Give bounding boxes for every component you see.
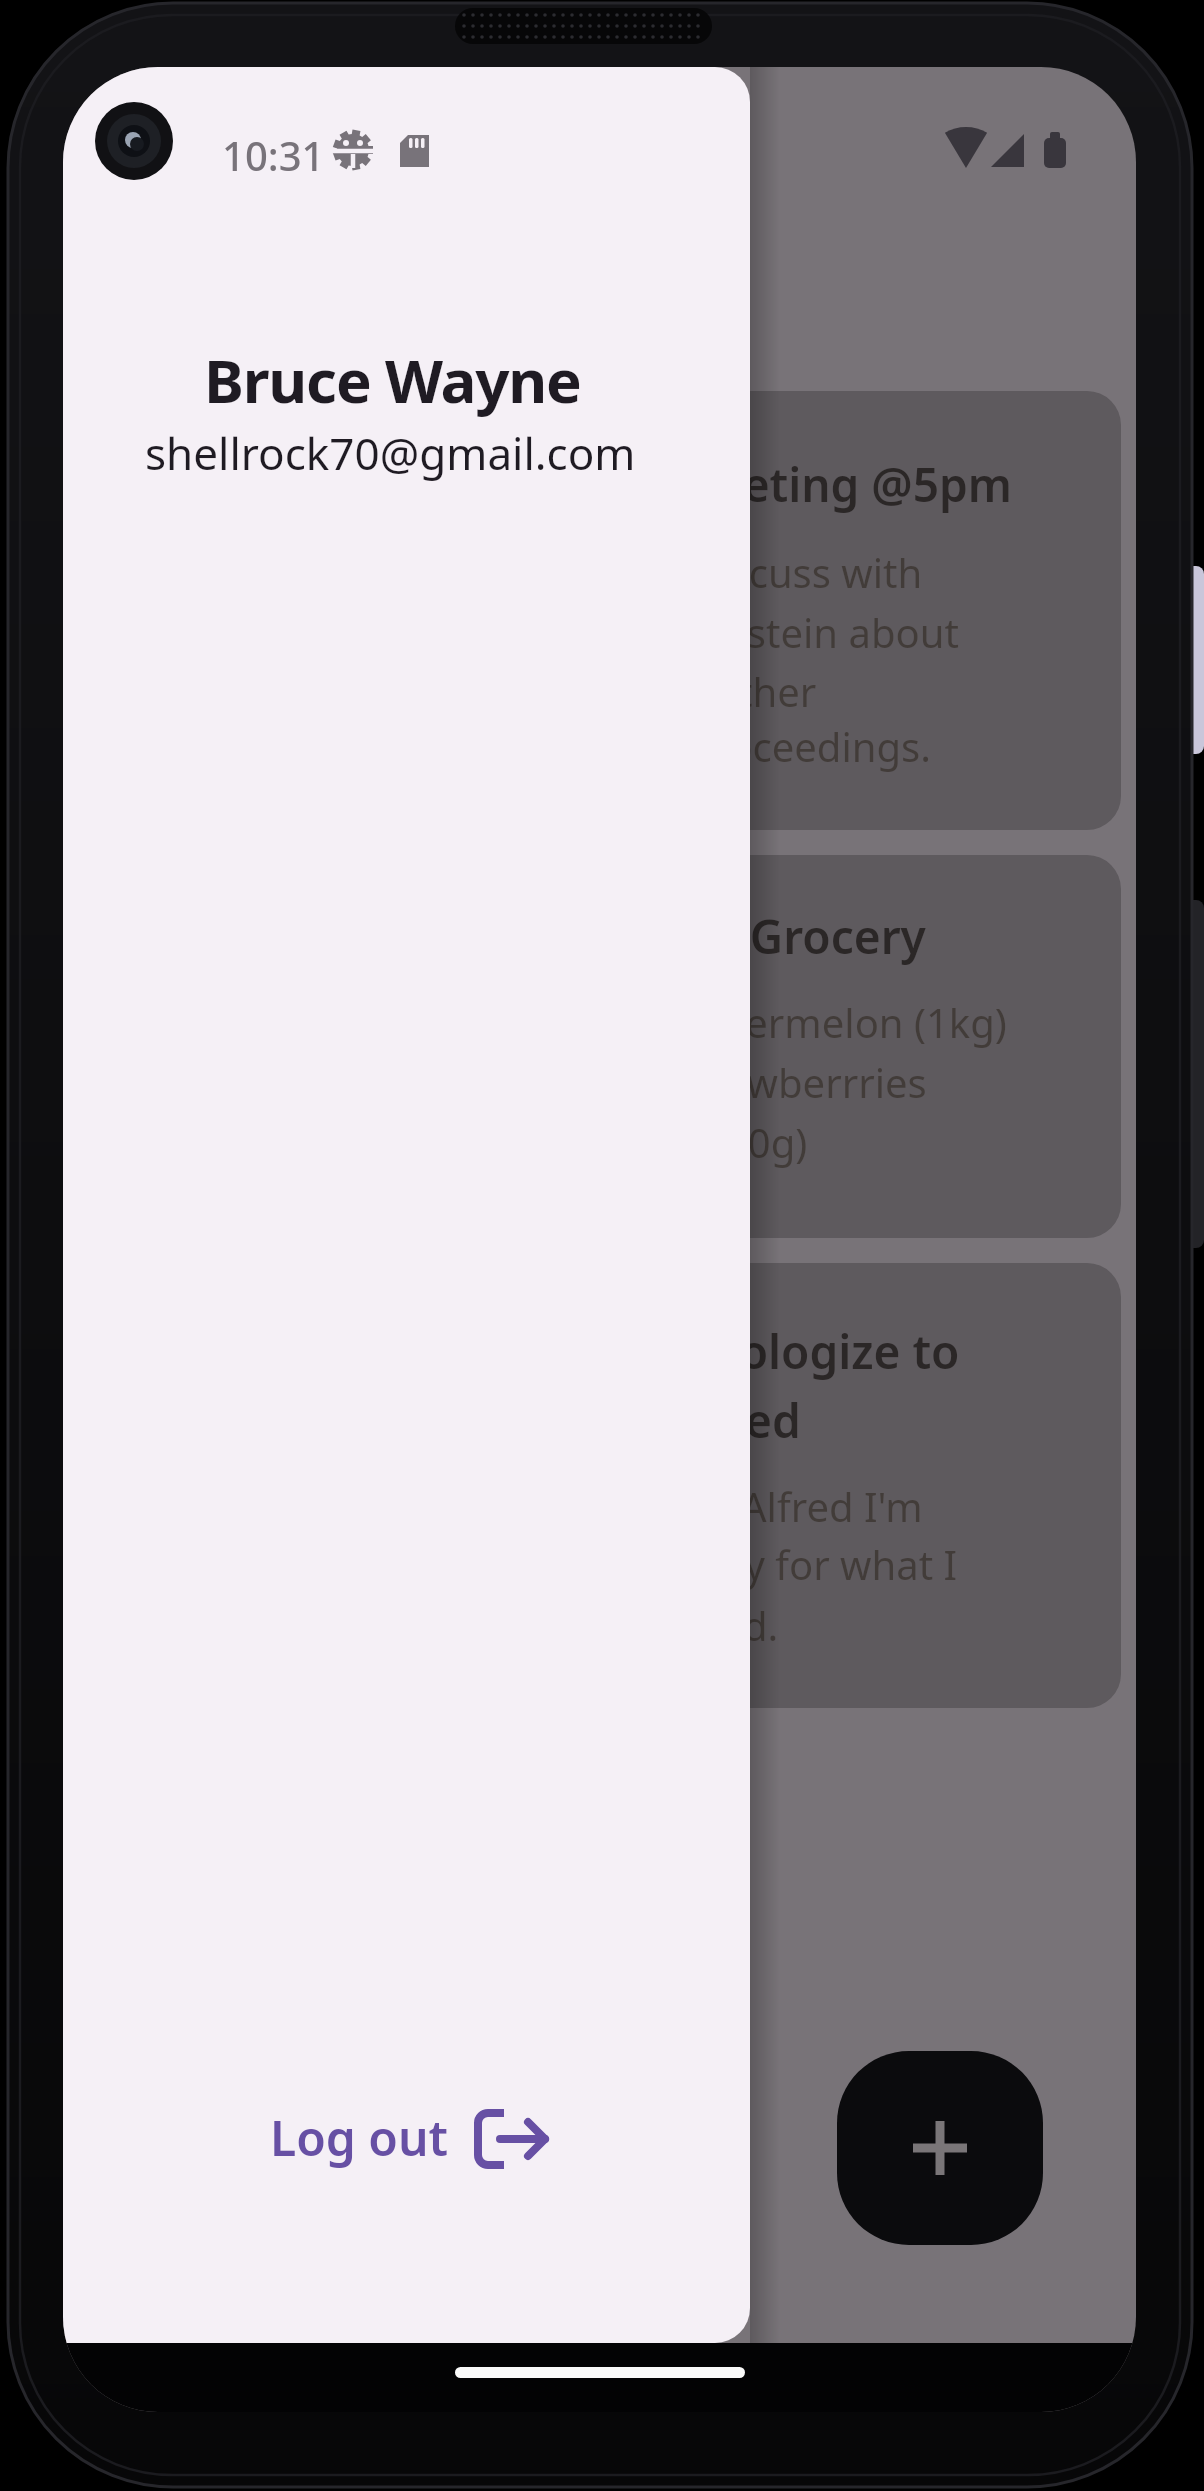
- staticText: sorry for what I: [668, 1537, 958, 1591]
- staticText: Alfred: [665, 1389, 801, 1452]
- button[interactable]: [610, 391, 1121, 830]
- staticText: Discuss with: [690, 545, 923, 599]
- button[interactable]: [610, 855, 1121, 1238]
- staticText: further: [683, 664, 817, 718]
- staticText: Strawberrries: [672, 1055, 927, 1109]
- button[interactable]: Log out: [253, 2087, 563, 2197]
- staticText: Bruce Wayne: [204, 339, 581, 421]
- button[interactable]: [837, 2051, 1043, 2245]
- button[interactable]: [610, 1263, 1121, 1708]
- staticText: did.: [708, 1598, 779, 1652]
- staticText: Meeting @5pm: [673, 453, 1012, 516]
- staticText: Tell Alfred I'm: [668, 1479, 923, 1533]
- staticText: Apologize to: [680, 1320, 960, 1383]
- staticText: Log out: [270, 2105, 449, 2170]
- staticText: proceedings.: [688, 719, 931, 773]
- staticText: 10:31: [222, 128, 325, 182]
- staticText: Watermelon (1kg): [672, 995, 1007, 1049]
- staticText: Buy Grocery: [653, 905, 926, 968]
- staticText: (250g): [690, 1115, 808, 1169]
- staticText: Epstein about: [700, 605, 959, 659]
- staticText: shellrock70@gmail.com: [145, 423, 636, 483]
